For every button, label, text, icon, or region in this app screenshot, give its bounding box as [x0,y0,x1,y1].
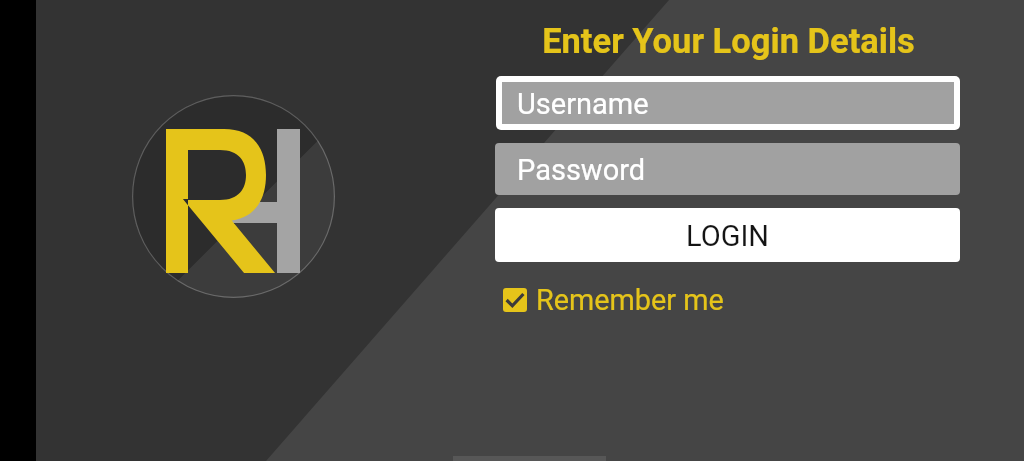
staticText: Remember me [536,283,724,317]
staticText: LOGIN [686,219,769,253]
staticText: Enter Your Login Details [542,21,915,61]
staticText: Password [517,153,646,187]
button[interactable]: LOGIN [495,208,960,262]
staticText: Username [517,87,649,121]
button[interactable]: Password [495,143,960,195]
button[interactable]: Username [502,82,954,124]
button[interactable]: Remember me [503,283,724,317]
